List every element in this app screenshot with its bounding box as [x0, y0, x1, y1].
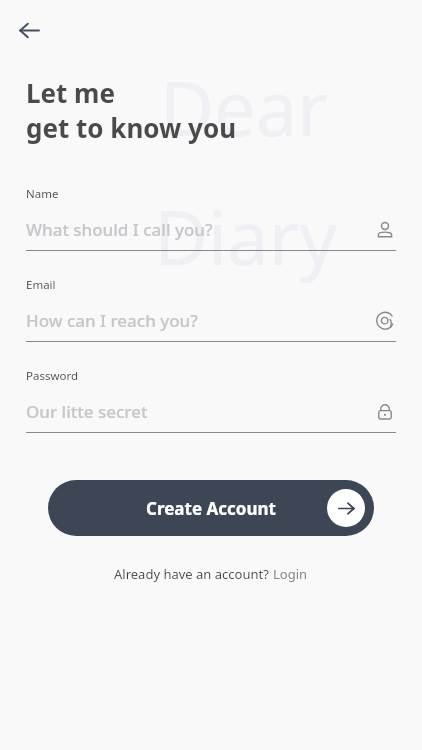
staticText: Login — [273, 565, 308, 583]
staticText: Let me — [26, 75, 115, 110]
staticText: Already have an account? — [114, 565, 273, 583]
staticText: get to know you — [26, 110, 237, 145]
staticText: What should I call you? — [26, 218, 213, 241]
staticText: Create Account — [146, 497, 276, 520]
staticText: How can I reach you? — [26, 309, 198, 332]
staticText: Password — [26, 368, 79, 384]
staticText: Diary — [154, 186, 337, 287]
button[interactable]: Login — [273, 565, 308, 583]
button[interactable]: Password — [0, 368, 422, 433]
staticText: Our litte secret — [26, 400, 148, 423]
staticText: Email — [26, 277, 56, 293]
button[interactable]: Email — [0, 277, 422, 342]
button[interactable]: Create Account — [48, 480, 374, 536]
button[interactable]: Back — [10, 11, 48, 49]
staticText: Name — [26, 186, 59, 202]
staticText: Dear — [160, 57, 328, 158]
button[interactable]: Name — [0, 186, 422, 251]
